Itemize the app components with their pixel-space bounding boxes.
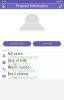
- staticText: ABOUT ME: [2, 50, 9, 51]
- staticText: Date of birth: [8, 59, 27, 62]
- staticText: 12 March 1990: [8, 62, 29, 66]
- staticText: Full name: [8, 52, 23, 56]
- staticText: Mobile number: [8, 66, 31, 69]
- staticText: Jonathan Appleseed: [8, 56, 37, 59]
- button[interactable]: Change email: [33, 41, 61, 46]
- button[interactable]: Change password: [3, 41, 31, 46]
- staticText: Personal Information: [16, 4, 48, 8]
- button[interactable]: Back: [0, 3, 7, 9]
- staticText: Change email: [42, 43, 51, 45]
- staticText: jon@appleseed.com: [8, 76, 36, 79]
- button[interactable]: Email address: [0, 73, 64, 80]
- button[interactable]: Mobile number: [0, 66, 64, 73]
- staticText: +1 415 555 0134: [8, 69, 35, 73]
- staticText: Change password: [10, 43, 24, 45]
- button[interactable]: Full name: [0, 52, 64, 59]
- button[interactable]: Date of birth: [0, 59, 64, 66]
- button[interactable]: Edit: [57, 3, 64, 9]
- staticText: Email address: [8, 72, 28, 76]
